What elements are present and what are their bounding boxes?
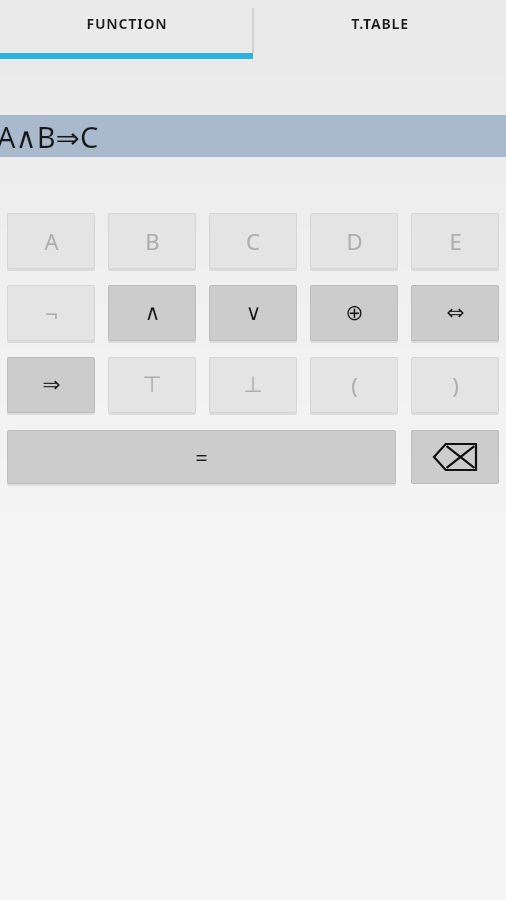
staticText: E: [449, 226, 462, 256]
button[interactable]: C: [209, 213, 297, 269]
button[interactable]: FUNCTION: [0, 0, 253, 59]
button[interactable]: A: [7, 213, 95, 269]
staticText: ¬: [45, 298, 58, 328]
button[interactable]: ⇔: [411, 285, 499, 341]
staticText: A: [44, 226, 59, 256]
button[interactable]: ∧: [108, 285, 196, 341]
button[interactable]: ⊥: [209, 357, 297, 413]
button[interactable]: ¬: [7, 285, 95, 341]
staticText: ⊤: [142, 372, 162, 398]
button[interactable]: ): [411, 357, 499, 413]
staticText: ⊕: [345, 300, 364, 326]
staticText: (: [351, 370, 358, 400]
staticText: T.TABLE: [351, 14, 409, 33]
staticText: ⇔: [446, 300, 465, 326]
staticText: C: [246, 226, 260, 256]
staticText: ): [452, 370, 459, 400]
button[interactable]: ⊤: [108, 357, 196, 413]
button[interactable]: ⊕: [310, 285, 398, 341]
button[interactable]: A∧B⇒C: [0, 115, 506, 157]
staticText: FUNCTION: [86, 14, 168, 33]
staticText: D: [346, 226, 363, 256]
button[interactable]: B: [108, 213, 196, 269]
staticText: ∧: [144, 300, 161, 326]
staticText: A∧B⇒C: [0, 117, 99, 156]
button[interactable]: ∨: [209, 285, 297, 341]
button[interactable]: ⇒: [7, 357, 95, 413]
staticText: B: [145, 226, 160, 256]
button[interactable]: T.TABLE: [253, 0, 506, 59]
staticText: =: [195, 442, 208, 472]
button[interactable]: Backspace: [411, 430, 499, 484]
button[interactable]: E: [411, 213, 499, 269]
staticText: ⇒: [42, 372, 61, 398]
staticText: ⊥: [243, 372, 263, 398]
button[interactable]: =: [7, 430, 396, 484]
staticText: ∨: [245, 300, 262, 326]
button[interactable]: (: [310, 357, 398, 413]
button[interactable]: D: [310, 213, 398, 269]
